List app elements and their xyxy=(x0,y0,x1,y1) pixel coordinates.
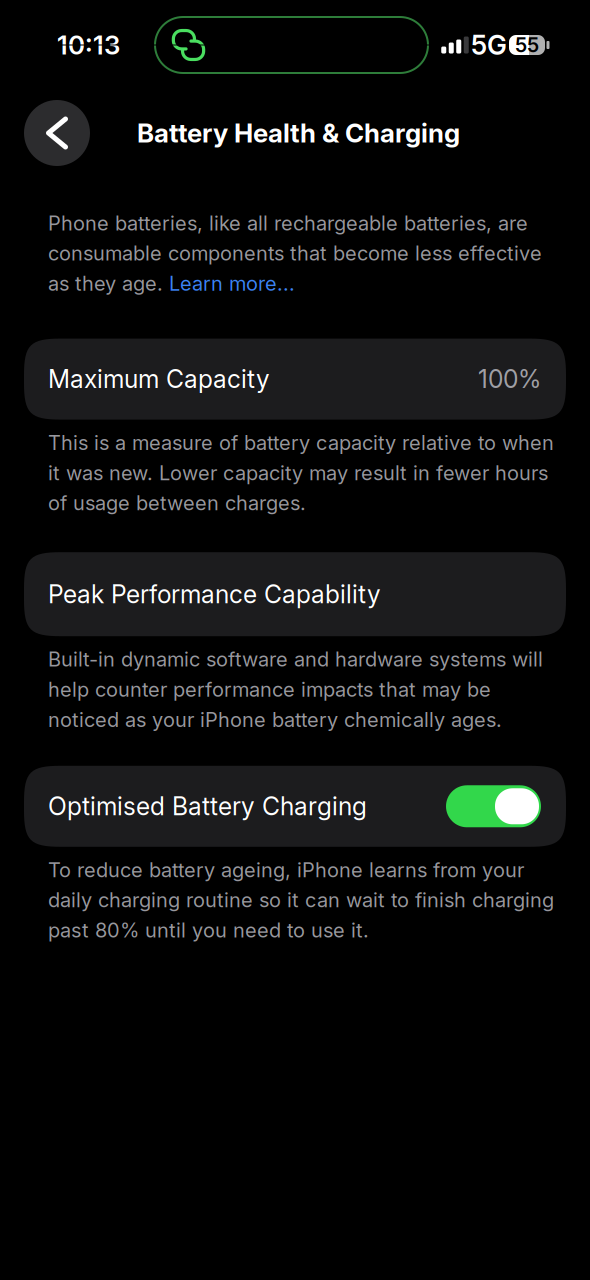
staticText: Built-in dynamic software and hardware s… xyxy=(48,647,543,732)
staticText: 100% xyxy=(478,364,541,394)
staticText: This is a measure of battery capacity re… xyxy=(48,431,554,515)
staticText: Maximum Capacity xyxy=(48,364,270,394)
button[interactable]: Optimised Battery Charging xyxy=(446,785,541,827)
staticText: Optimised Battery Charging xyxy=(48,791,367,821)
button[interactable]: Back xyxy=(24,100,90,166)
staticText: Peak Performance Capability xyxy=(48,579,381,609)
button[interactable]: Maximum Capacity xyxy=(24,339,566,420)
button[interactable]: Peak Performance Capability xyxy=(24,552,566,636)
staticText: 5G xyxy=(471,29,507,61)
staticText: 55 xyxy=(515,33,539,57)
staticText: Phone batteries, like all rechargeable b… xyxy=(48,211,542,296)
staticText: To reduce battery ageing, iPhone learns … xyxy=(48,858,554,942)
staticText: Battery Health & Charging xyxy=(137,117,460,149)
staticText: 10:13 xyxy=(57,29,120,61)
